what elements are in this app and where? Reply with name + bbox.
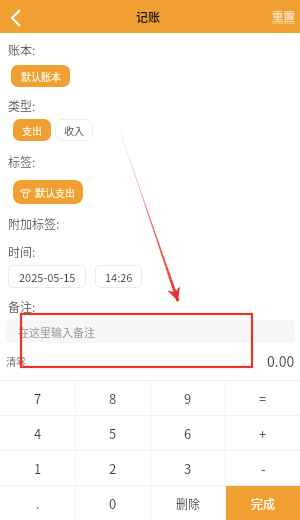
staticText: + [259,424,267,443]
staticText: 支出 [22,123,42,137]
button[interactable]: 完成 [226,486,300,520]
button[interactable]: 6 [151,416,225,450]
button[interactable]: 默认支出 [13,180,83,204]
staticText: 0.00 [267,351,295,371]
staticText: 4 [34,424,42,443]
staticText: 2025-05-15 [19,269,76,285]
staticText: 记账 [136,8,161,25]
staticText: 清零 [6,354,26,368]
staticText: 2 [109,459,117,478]
staticText: 0 [109,494,117,513]
staticText: 在这里输入备注 [18,324,95,340]
staticText: 5 [109,424,117,443]
staticText: 1 [34,459,42,478]
button[interactable]: 删除 [151,486,225,520]
staticText: 默认账本 [21,69,61,83]
staticText: 收入 [64,123,84,137]
button[interactable]: 2025-05-15 [8,265,86,288]
button[interactable]: 清零 [6,354,26,368]
staticText: 14:26 [105,269,133,285]
button[interactable]: 0 [76,486,150,520]
staticText: 默认支出 [35,185,75,199]
staticText: 8 [109,389,117,408]
staticText: 附加标签: [8,215,60,232]
staticText: 7 [34,389,42,408]
button[interactable]: 默认账本 [11,65,70,87]
button[interactable]: - [226,451,300,485]
staticText: 9 [184,389,192,408]
button[interactable]: 7 [0,381,75,415]
staticText: 完成 [251,495,276,512]
staticText: 标签: [8,153,36,170]
button[interactable]: 4 [0,416,75,450]
button[interactable]: = [226,381,300,415]
button[interactable]: 重置 [270,6,297,27]
button[interactable]: 14:26 [95,265,142,288]
staticText: 删除 [176,495,201,512]
staticText: . [36,494,40,513]
staticText: 3 [184,459,192,478]
staticText: 6 [184,424,192,443]
staticText: = [259,389,267,408]
button[interactable]: 收入 [55,119,93,141]
staticText: 时间: [8,243,36,260]
button[interactable]: 3 [151,451,225,485]
staticText: - [261,459,266,478]
button[interactable]: . [0,486,75,520]
button[interactable]: 在这里输入备注 [6,320,295,343]
button[interactable]: 1 [0,451,75,485]
button[interactable]: Back [0,0,33,33]
button[interactable]: 9 [151,381,225,415]
staticText: 备注: [8,298,36,315]
button[interactable]: 支出 [13,119,51,141]
button[interactable]: 8 [76,381,150,415]
button[interactable]: 5 [76,416,150,450]
staticText: 重置 [272,8,295,25]
button[interactable]: 2 [76,451,150,485]
staticText: 账本: [8,41,36,58]
staticText: 类型: [8,97,36,114]
button[interactable]: + [226,416,300,450]
